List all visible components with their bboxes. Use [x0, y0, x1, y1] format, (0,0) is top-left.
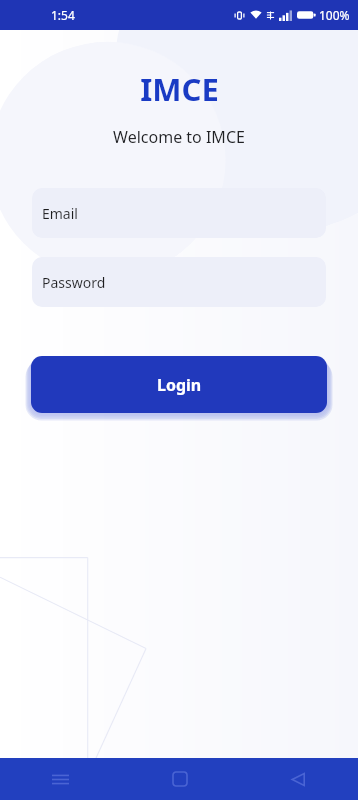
button[interactable]: Home	[120, 758, 239, 800]
staticText: 1:54	[51, 7, 75, 23]
button[interactable]: Login	[31, 356, 327, 413]
staticText: Password	[42, 273, 106, 292]
staticText: IMCE	[140, 68, 219, 110]
staticText: Login	[157, 374, 202, 396]
staticText: Email	[42, 204, 78, 223]
button[interactable]: Recent apps	[0, 758, 120, 800]
button[interactable]: Email	[32, 188, 326, 238]
button[interactable]: Back	[239, 758, 358, 800]
button[interactable]: Password	[32, 257, 326, 307]
staticText: 100%	[319, 7, 350, 23]
staticText: Welcome to IMCE	[113, 126, 245, 148]
